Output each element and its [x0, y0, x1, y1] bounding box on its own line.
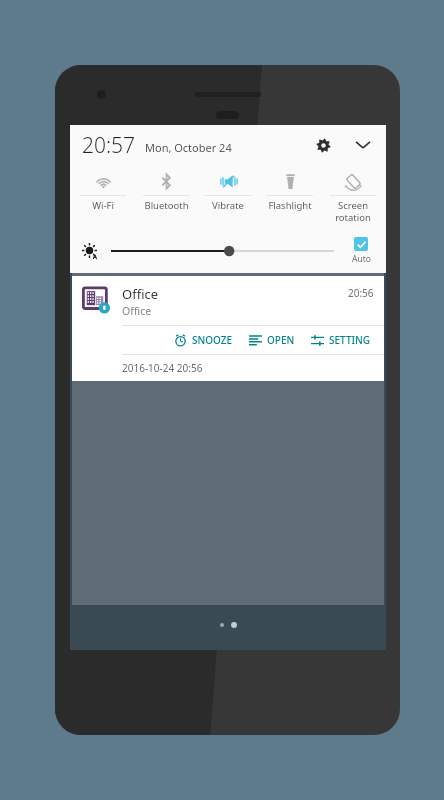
staticText: SNOOZE [192, 333, 233, 347]
button[interactable]: Settings [310, 132, 336, 158]
staticText: SETTING [329, 333, 371, 347]
staticText: 20:57 [82, 131, 136, 160]
staticText: Bluetooth [144, 199, 189, 212]
staticText: OPEN [267, 333, 295, 347]
staticText: Volume button [160, 147, 220, 159]
staticText: Screen rotation [335, 199, 371, 223]
button[interactable]: Bluetooth [137, 167, 195, 214]
button[interactable]: TUFFS [78, 131, 150, 159]
staticText: Office [122, 304, 152, 318]
staticText: WiFi ADB [324, 147, 361, 159]
staticText: Wi-Fi [92, 199, 114, 212]
staticText: Office [122, 285, 159, 303]
button[interactable]: Vibrate [199, 167, 257, 214]
staticText: CLEAR [314, 132, 349, 147]
button[interactable]: Collapse [350, 132, 376, 158]
button[interactable]: Flashlight [261, 167, 319, 214]
button[interactable]: Volume Schedu… [230, 131, 302, 159]
staticText: Vibrate [212, 199, 244, 212]
button[interactable]: Office [82, 285, 374, 318]
button[interactable]: OPEN [246, 329, 298, 351]
button[interactable]: Wi-Fi [74, 167, 132, 214]
button[interactable]: Auto [344, 237, 378, 265]
staticText: airtel [76, 132, 103, 146]
button[interactable]: Brightness [111, 240, 334, 262]
button[interactable]: Screen rotation [324, 167, 382, 225]
staticText: 20:56 [348, 286, 374, 300]
staticText: Auto [352, 253, 371, 265]
staticText: TUFFS [102, 147, 127, 159]
button[interactable]: SETTING [308, 329, 374, 351]
staticText: Flashlight [268, 199, 312, 212]
button[interactable]: WiFi ADB [306, 131, 378, 159]
button[interactable]: SNOOZE [171, 329, 236, 351]
staticText: Mon, October 24 [145, 140, 232, 155]
staticText: 2016-10-24 20:56 [122, 361, 203, 375]
button[interactable]: Volume button [154, 131, 226, 159]
